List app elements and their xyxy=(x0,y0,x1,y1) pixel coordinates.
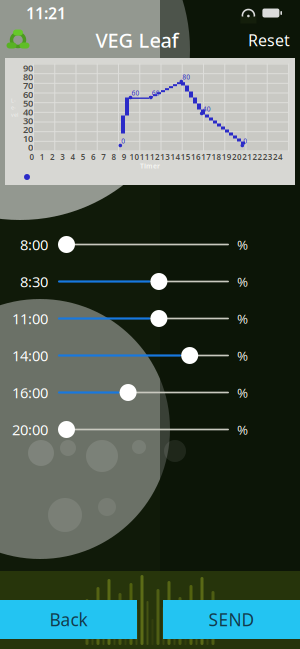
button[interactable]: Back xyxy=(0,600,137,639)
button[interactable]: Recycle xyxy=(0,26,36,54)
staticText: % xyxy=(237,236,248,253)
staticText: 30 xyxy=(23,114,33,127)
staticText: 12 xyxy=(150,152,160,162)
button[interactable]: 11:00 level slider xyxy=(58,306,229,331)
staticText: 4 xyxy=(71,152,76,162)
staticText: 50 xyxy=(23,97,33,109)
staticText: % xyxy=(237,421,248,438)
staticText: 13 xyxy=(160,152,170,162)
staticText: Back xyxy=(49,608,87,631)
staticText: 5 xyxy=(81,152,86,162)
staticText: 21 xyxy=(242,152,252,162)
staticText: 70 xyxy=(23,79,33,92)
staticText: % xyxy=(237,384,248,401)
staticText: 80 xyxy=(182,72,190,81)
button[interactable]: 8:30 level slider xyxy=(58,269,229,294)
staticText: 20:00 xyxy=(12,420,48,439)
button[interactable]: 8:00 level slider xyxy=(58,232,229,257)
staticText: 0 xyxy=(28,141,33,153)
staticText: 40 xyxy=(203,104,211,113)
staticText: 17 xyxy=(201,152,211,162)
staticText: Timer xyxy=(140,162,160,170)
staticText: 19 xyxy=(222,152,232,162)
staticText: Level xyxy=(11,97,18,118)
staticText: % xyxy=(237,347,248,364)
staticText: SEND xyxy=(208,608,254,631)
button[interactable]: 14:00 level slider xyxy=(58,343,229,368)
staticText: VEG Leaf xyxy=(95,27,178,53)
staticText: 2 xyxy=(50,152,55,162)
button[interactable]: 16:00 level slider xyxy=(58,380,229,405)
staticText: 7 xyxy=(101,152,106,162)
staticText: 11 xyxy=(140,152,150,162)
staticText: 60 xyxy=(23,88,33,100)
staticText: 8:00 xyxy=(20,235,48,254)
staticText: 8 xyxy=(111,152,116,162)
staticText: 90 xyxy=(23,62,33,74)
staticText: 0 xyxy=(121,136,125,145)
staticText: 1 xyxy=(40,152,45,162)
staticText: 3 xyxy=(60,152,65,162)
staticText: 15 xyxy=(181,152,191,162)
staticText: 0 xyxy=(243,136,247,145)
staticText: 14 xyxy=(170,152,180,162)
staticText: 0 xyxy=(30,152,35,162)
staticText: 10 xyxy=(23,132,33,144)
staticText: 14:00 xyxy=(12,346,48,365)
button[interactable]: SEND xyxy=(163,600,300,639)
staticText: 22 xyxy=(252,152,262,162)
staticText: 11:21 xyxy=(26,2,66,24)
staticText: 20 xyxy=(232,152,242,162)
staticText: 11:00 xyxy=(12,309,48,328)
button[interactable]: Reset xyxy=(238,23,300,57)
staticText: 20 xyxy=(23,123,33,136)
staticText: % xyxy=(237,310,248,327)
staticText: 6 xyxy=(91,152,96,162)
staticText: Reset xyxy=(248,29,290,51)
button[interactable]: 20:00 level slider xyxy=(58,417,229,442)
staticText: 80 xyxy=(23,70,33,83)
staticText: 16:00 xyxy=(12,383,48,402)
staticText: 60 xyxy=(152,88,160,97)
staticText: % xyxy=(237,273,248,290)
staticText: 23 xyxy=(263,152,273,162)
staticText: 9 xyxy=(122,152,127,162)
staticText: 10 xyxy=(129,152,139,162)
staticText: 18 xyxy=(211,152,221,162)
staticText: 16 xyxy=(191,152,201,162)
staticText: 8:30 xyxy=(20,272,48,291)
staticText: 40 xyxy=(23,106,33,118)
staticText: 60 xyxy=(131,88,139,97)
staticText: 24 xyxy=(273,152,283,162)
